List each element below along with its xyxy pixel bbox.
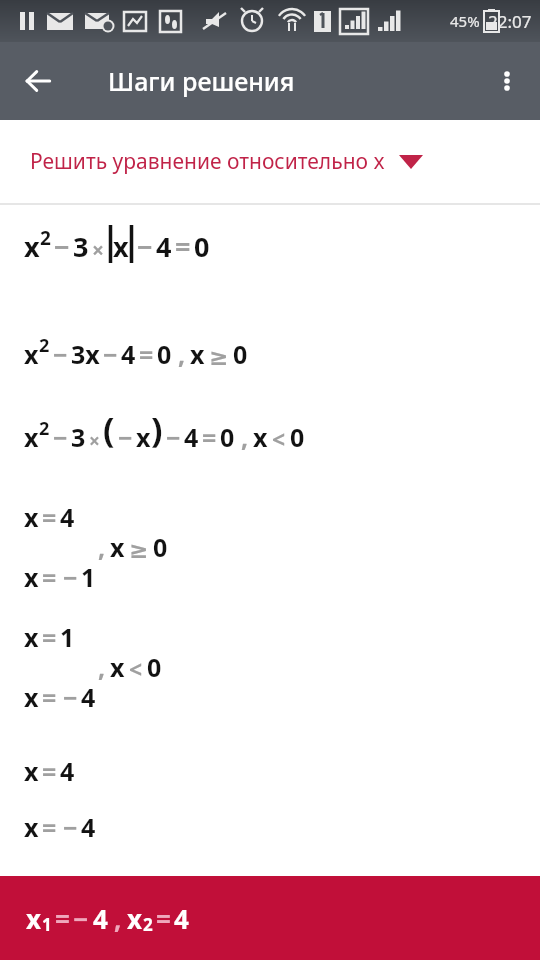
staticText: 22:07	[488, 10, 532, 33]
staticText: ≥	[129, 537, 149, 564]
staticText: 0	[153, 530, 168, 564]
staticText: −	[63, 810, 78, 844]
staticText: x	[110, 530, 125, 564]
staticText: ,	[114, 901, 122, 936]
staticText: <	[129, 653, 143, 684]
staticText: −	[63, 680, 78, 714]
staticText: 4	[93, 901, 108, 936]
button[interactable]: More options	[482, 56, 532, 106]
staticText: =	[42, 620, 57, 654]
staticText: −	[118, 420, 133, 454]
staticText: 4	[81, 810, 96, 844]
button[interactable]: x	[0, 219, 540, 271]
staticText: ≥	[209, 344, 229, 371]
staticText: =	[156, 901, 171, 936]
staticText: x	[113, 228, 129, 265]
staticText: 1	[42, 913, 52, 936]
staticText: −	[103, 337, 118, 371]
staticText: ,	[98, 650, 106, 684]
button[interactable]: x	[0, 876, 540, 960]
button[interactable]: Back	[12, 55, 64, 107]
staticText: 0	[194, 228, 210, 265]
button[interactable]: x	[0, 500, 540, 594]
staticText: =	[42, 754, 57, 788]
button[interactable]: x	[0, 402, 540, 458]
button[interactable]: x	[0, 754, 540, 788]
staticText: x	[110, 650, 125, 684]
staticText: =	[42, 500, 57, 534]
staticText: −	[73, 901, 89, 936]
staticText: x	[24, 420, 39, 454]
staticText: 3	[71, 420, 86, 454]
button[interactable]: x	[0, 810, 540, 844]
staticText: 0	[147, 650, 162, 684]
staticText: x	[24, 228, 40, 265]
staticText: =	[139, 337, 154, 371]
staticText: =	[42, 560, 57, 594]
staticText: =	[175, 228, 191, 265]
staticText: 4	[156, 228, 172, 265]
staticText: ,	[178, 337, 186, 371]
staticText: 4	[121, 337, 136, 371]
staticText: −	[53, 337, 68, 371]
staticText: −	[137, 228, 153, 265]
staticText: 1	[60, 620, 75, 654]
staticText: x	[26, 901, 42, 936]
staticText: Решить уравнение относительно x	[30, 147, 385, 176]
staticText: (	[103, 406, 115, 452]
staticText: x	[24, 810, 39, 844]
staticText: 4	[174, 901, 189, 936]
staticText: 1	[81, 560, 96, 594]
staticText: 4	[60, 500, 75, 534]
staticText: x	[24, 337, 39, 371]
staticText: x	[24, 560, 39, 594]
staticText: 4	[60, 754, 75, 788]
staticText: 3	[73, 228, 89, 265]
staticText: −	[53, 420, 68, 454]
staticText: ,	[98, 530, 106, 564]
staticText: x	[24, 620, 39, 654]
staticText: 0	[157, 337, 172, 371]
staticText: 0	[290, 420, 305, 454]
staticText: ×	[89, 428, 100, 454]
staticText: 0	[233, 337, 248, 371]
staticText: =	[42, 810, 57, 844]
staticText: )	[151, 406, 163, 452]
staticText: x	[24, 680, 39, 714]
staticText: x	[253, 420, 268, 454]
staticText: x	[24, 500, 39, 534]
staticText: x	[127, 901, 143, 936]
staticText: −	[54, 228, 70, 265]
staticText: 2	[143, 913, 153, 936]
staticText: 45%	[450, 11, 480, 31]
staticText: ×	[92, 236, 105, 265]
staticText: 4	[81, 680, 96, 714]
staticText: 3x	[71, 337, 100, 371]
staticText: =	[202, 420, 217, 454]
staticText: 2	[40, 225, 51, 251]
staticText: <	[272, 423, 286, 454]
button[interactable]: x	[0, 620, 540, 714]
staticText: −	[63, 560, 78, 594]
staticText: x	[190, 337, 205, 371]
button[interactable]: Решить уравнение относительно x	[0, 120, 540, 203]
staticText: 2	[39, 333, 50, 358]
staticText: 4	[184, 420, 199, 454]
staticText: =	[42, 680, 57, 714]
staticText: 0	[220, 420, 235, 454]
staticText: Шаги решения	[108, 64, 295, 98]
staticText: x	[24, 754, 39, 788]
button[interactable]: x	[0, 329, 540, 375]
staticText: 2	[39, 416, 50, 441]
staticText: x	[136, 420, 151, 454]
staticText: =	[55, 901, 70, 936]
staticText: ,	[241, 420, 249, 454]
staticText: −	[166, 420, 181, 454]
